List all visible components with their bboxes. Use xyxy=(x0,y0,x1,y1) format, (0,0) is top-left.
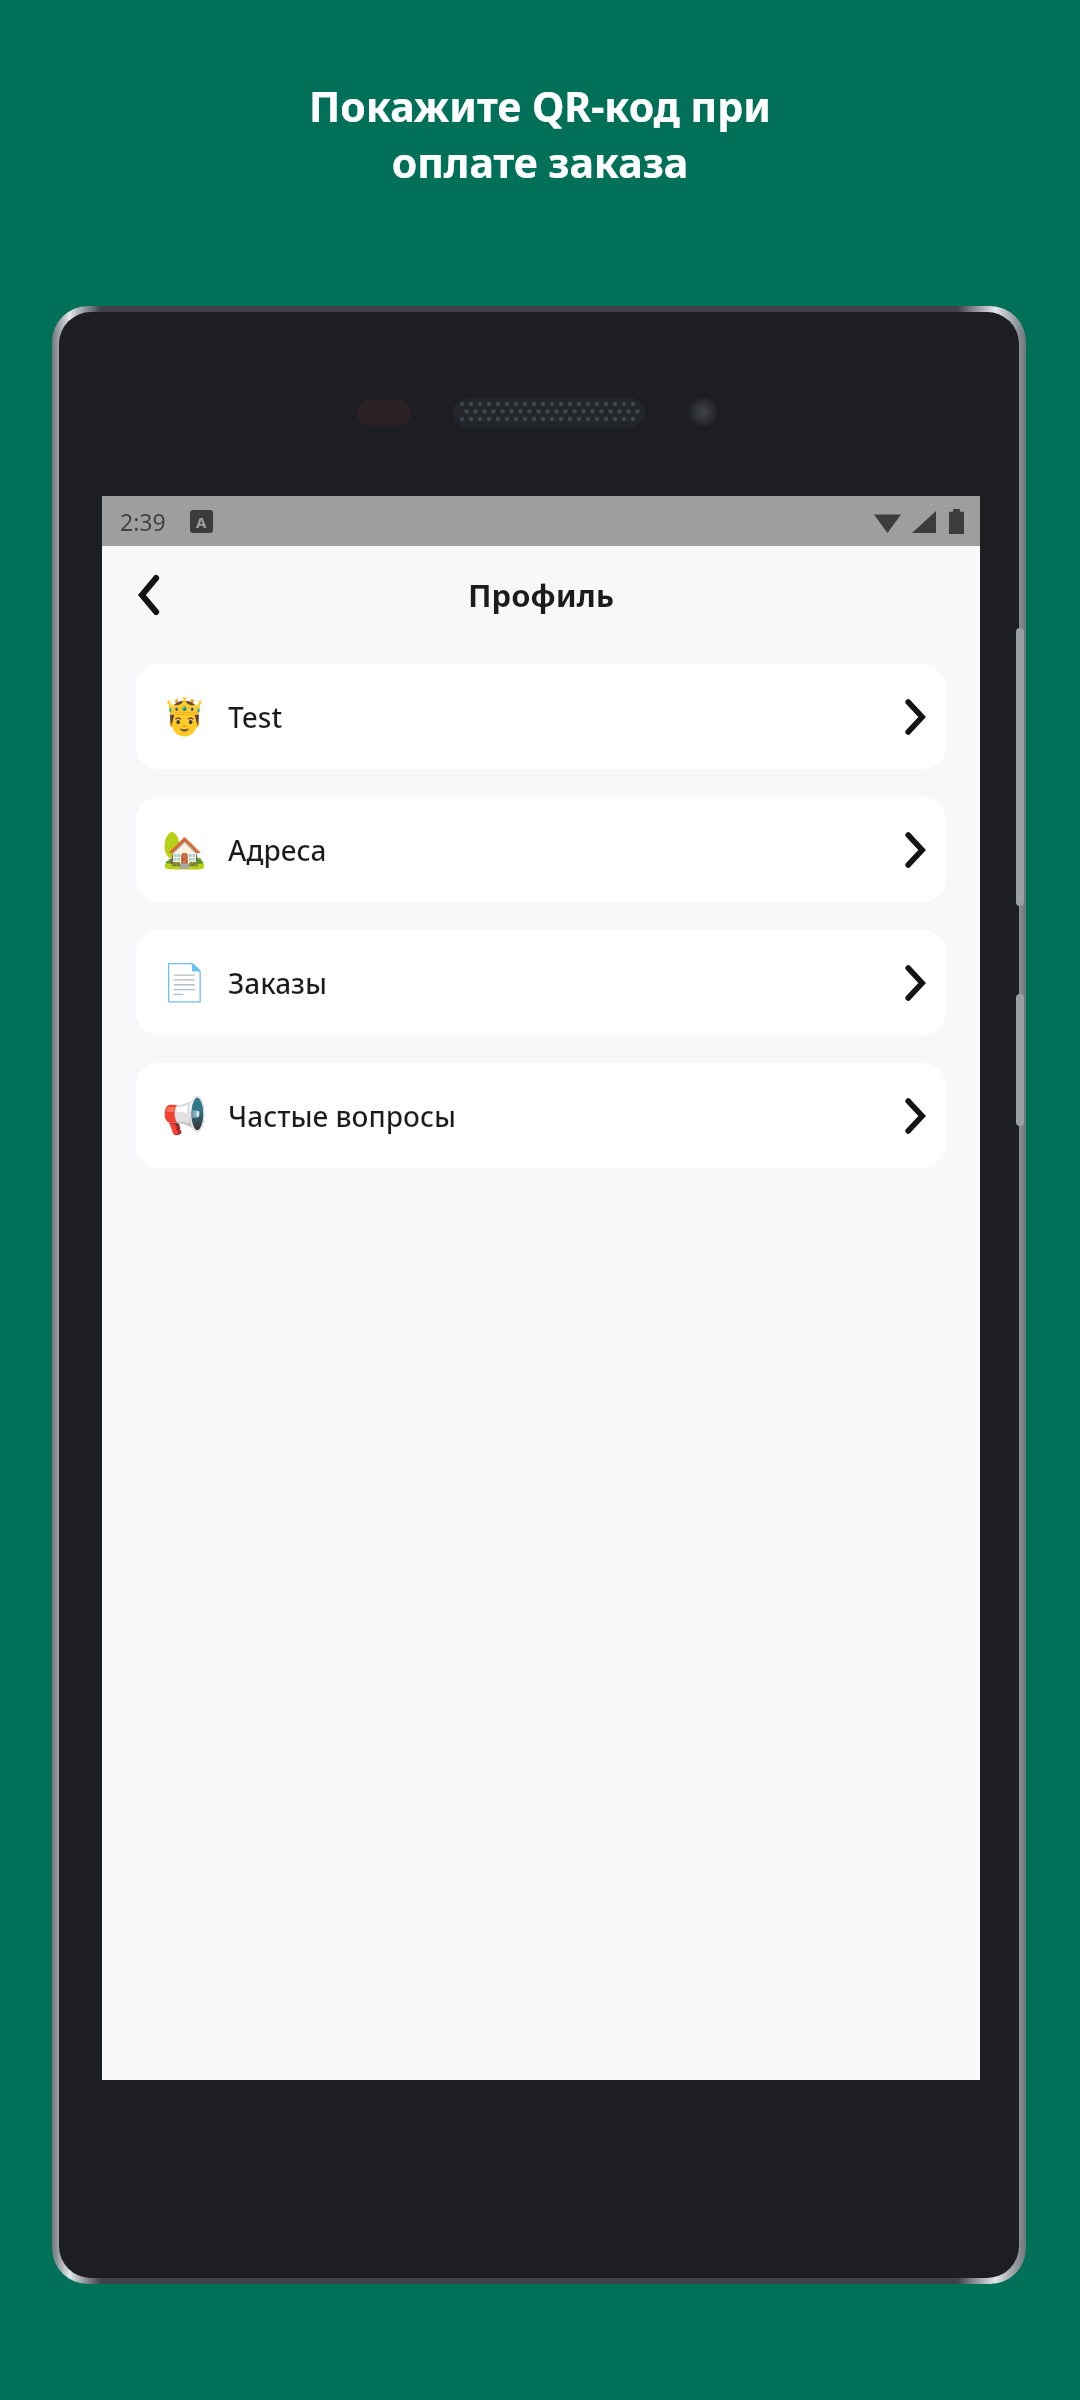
staticText: Профиль xyxy=(468,574,615,616)
staticText: Адреса xyxy=(228,831,906,869)
staticText: A xyxy=(196,512,207,532)
button[interactable]: 🏡 xyxy=(136,797,946,902)
staticText: Частые вопросы xyxy=(228,1097,906,1135)
staticText: 🤴 xyxy=(162,696,207,738)
staticText: 📄 xyxy=(162,962,207,1004)
button[interactable]: 🤴 xyxy=(136,664,946,769)
staticText: 📢 xyxy=(162,1095,207,1137)
staticText: Заказы xyxy=(228,964,906,1002)
staticText: Test xyxy=(228,698,906,736)
button[interactable]: 📄 xyxy=(136,930,946,1035)
staticText: 🏡 xyxy=(162,829,207,871)
staticText: 2:39 xyxy=(120,506,166,537)
button[interactable]: 📢 xyxy=(136,1063,946,1168)
button[interactable]: Back xyxy=(114,560,184,630)
staticText: Покажите QR-код при оплате заказа xyxy=(309,78,771,190)
